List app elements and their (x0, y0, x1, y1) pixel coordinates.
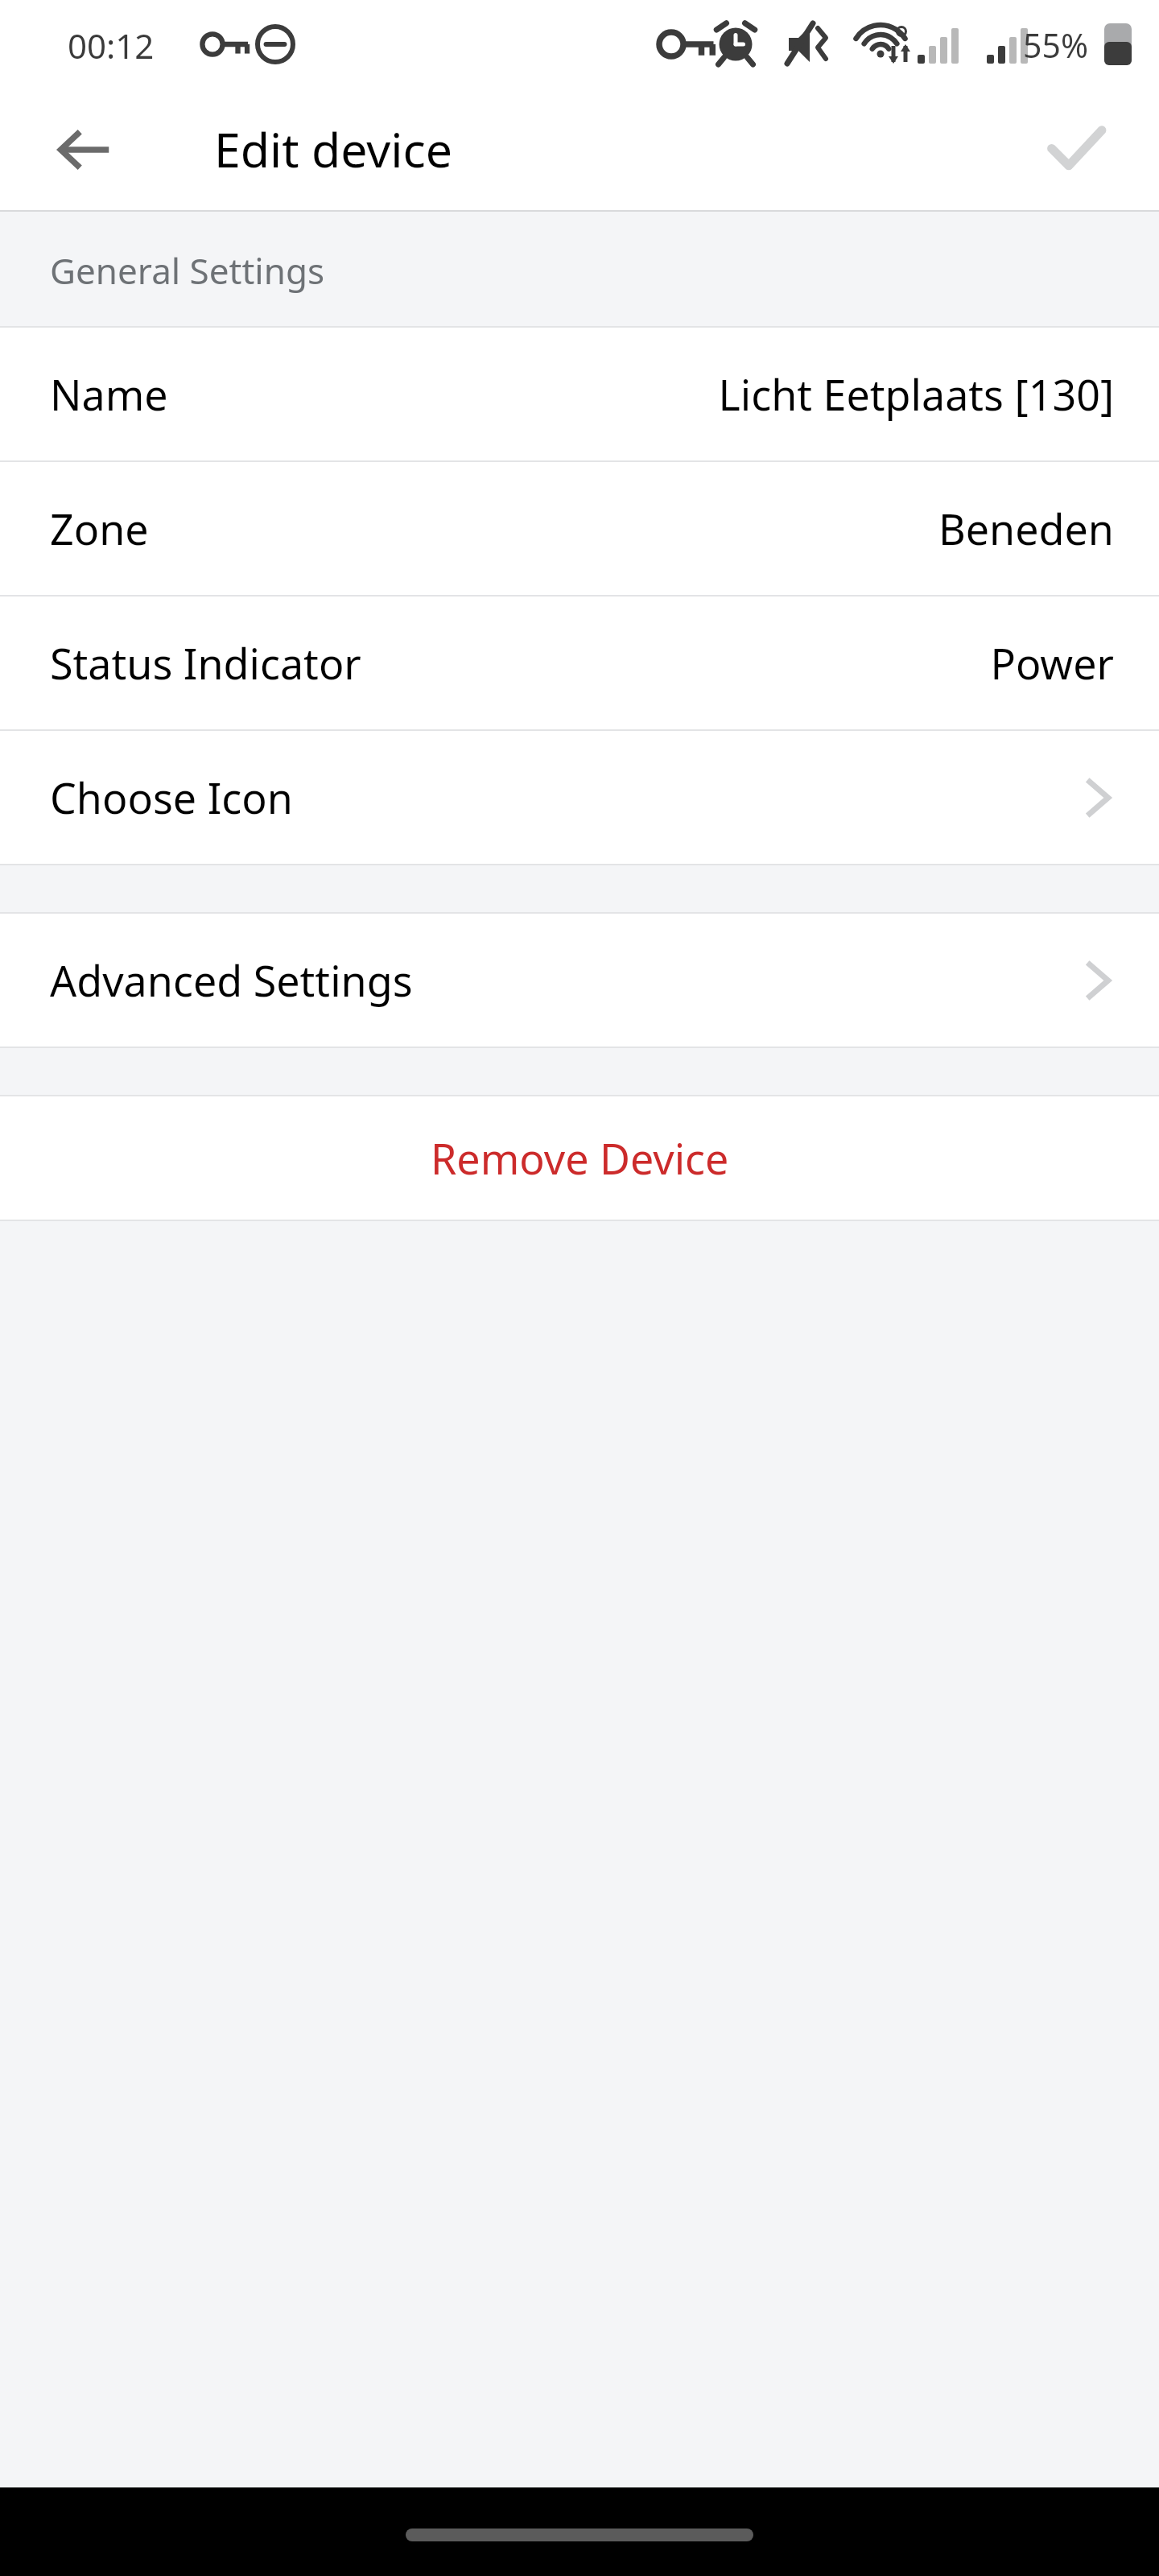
staticText: Power (990, 634, 1114, 691)
staticText: Edit device (214, 117, 453, 181)
button[interactable]: Zone (0, 462, 1159, 595)
button[interactable]: Advanced Settings (0, 914, 1159, 1046)
staticText: 00:12 (68, 23, 155, 68)
button[interactable]: Remove Device (0, 1096, 1159, 1220)
staticText: Name (50, 365, 168, 423)
staticText: Advanced Settings (50, 952, 413, 1009)
staticText: 55% (1023, 23, 1088, 68)
staticText: Licht Eetplaats [130] (718, 365, 1114, 423)
button[interactable]: Back (32, 97, 137, 202)
button[interactable]: Name (0, 328, 1159, 460)
button[interactable]: Status Indicator (0, 597, 1159, 729)
staticText: General Settings (50, 246, 325, 295)
staticText: Choose Icon (50, 769, 293, 826)
staticText: Status Indicator (50, 634, 361, 691)
staticText: Beneden (938, 500, 1114, 557)
button[interactable]: Choose Icon (0, 731, 1159, 864)
staticText: Zone (50, 500, 149, 557)
staticText: Remove Device (431, 1129, 729, 1187)
button[interactable]: Save (1024, 97, 1128, 202)
